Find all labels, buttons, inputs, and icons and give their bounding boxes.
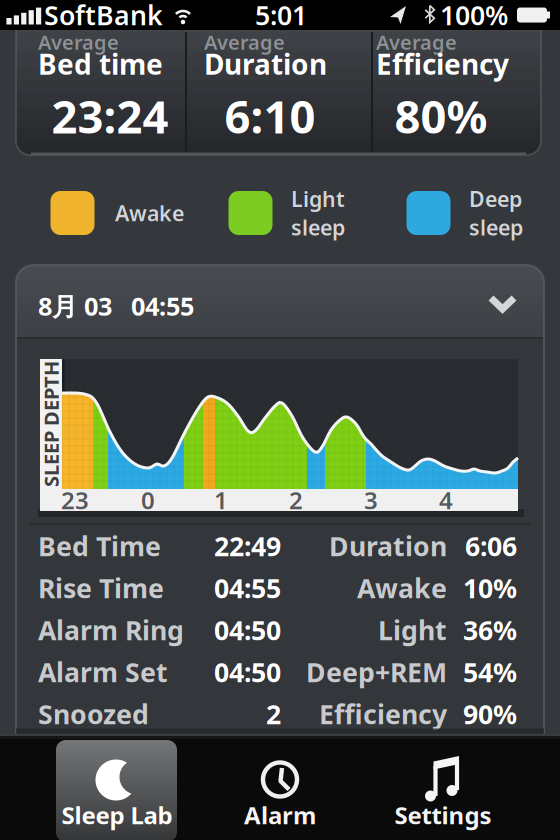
staticText: Alarm Ring (38, 612, 184, 648)
staticText: Light sleep (291, 185, 345, 241)
staticText: Efficiency (376, 45, 509, 83)
staticText: SoftBank (44, 0, 163, 33)
staticText: Awake (357, 570, 447, 606)
staticText: Sleep Lab (61, 799, 172, 831)
staticText: Alarm (244, 799, 316, 831)
staticText: Rise Time (38, 570, 164, 606)
staticText: Average (204, 29, 285, 55)
staticText: 2 (266, 696, 281, 732)
staticText: Deep+REM (306, 654, 447, 690)
staticText: Bed time (38, 45, 163, 83)
staticText: 3 (364, 484, 378, 516)
staticText: 0 (141, 484, 155, 516)
staticText: Awake (115, 199, 184, 227)
button[interactable]: Alarm (210, 740, 350, 840)
staticText: 23 (61, 484, 89, 516)
staticText: 6:10 (224, 86, 315, 146)
staticText: SLEEP DEPTH (0, 411, 114, 437)
staticText: 22:49 (214, 528, 281, 564)
staticText: 6:06 (465, 528, 517, 564)
staticText: Light (378, 612, 447, 648)
staticText: 80% (394, 86, 487, 146)
staticText: 04:55 (131, 289, 194, 323)
staticText: 04:50 (214, 612, 281, 648)
staticText: 04:50 (214, 654, 281, 690)
staticText: Alarm Set (38, 654, 168, 690)
staticText: 36% (463, 612, 517, 648)
staticText: 54% (463, 654, 517, 690)
staticText: Snoozed (38, 696, 149, 732)
staticText: Bed Time (38, 528, 161, 564)
staticText: 23:24 (51, 86, 168, 146)
staticText: 10% (463, 570, 517, 606)
staticText: Duration (329, 528, 447, 564)
staticText: 2 (289, 484, 303, 516)
staticText: 1 (214, 484, 228, 516)
staticText: Settings (394, 799, 491, 831)
staticText: 04:55 (214, 570, 281, 606)
staticText: Average (376, 29, 457, 55)
button[interactable]: Sleep Lab (56, 740, 177, 840)
staticText: 4 (439, 484, 453, 516)
staticText: 100% (440, 0, 508, 33)
staticText: Efficiency (319, 696, 447, 732)
button[interactable]: Collapse entry (480, 285, 525, 322)
button[interactable]: Settings (373, 740, 513, 840)
staticText: Average (38, 29, 119, 55)
staticText: 8月 03 (38, 289, 112, 323)
staticText: Duration (204, 45, 327, 83)
staticText: 90% (463, 696, 517, 732)
staticText: 5:01 (255, 0, 307, 33)
staticText: Deep sleep (469, 185, 523, 241)
